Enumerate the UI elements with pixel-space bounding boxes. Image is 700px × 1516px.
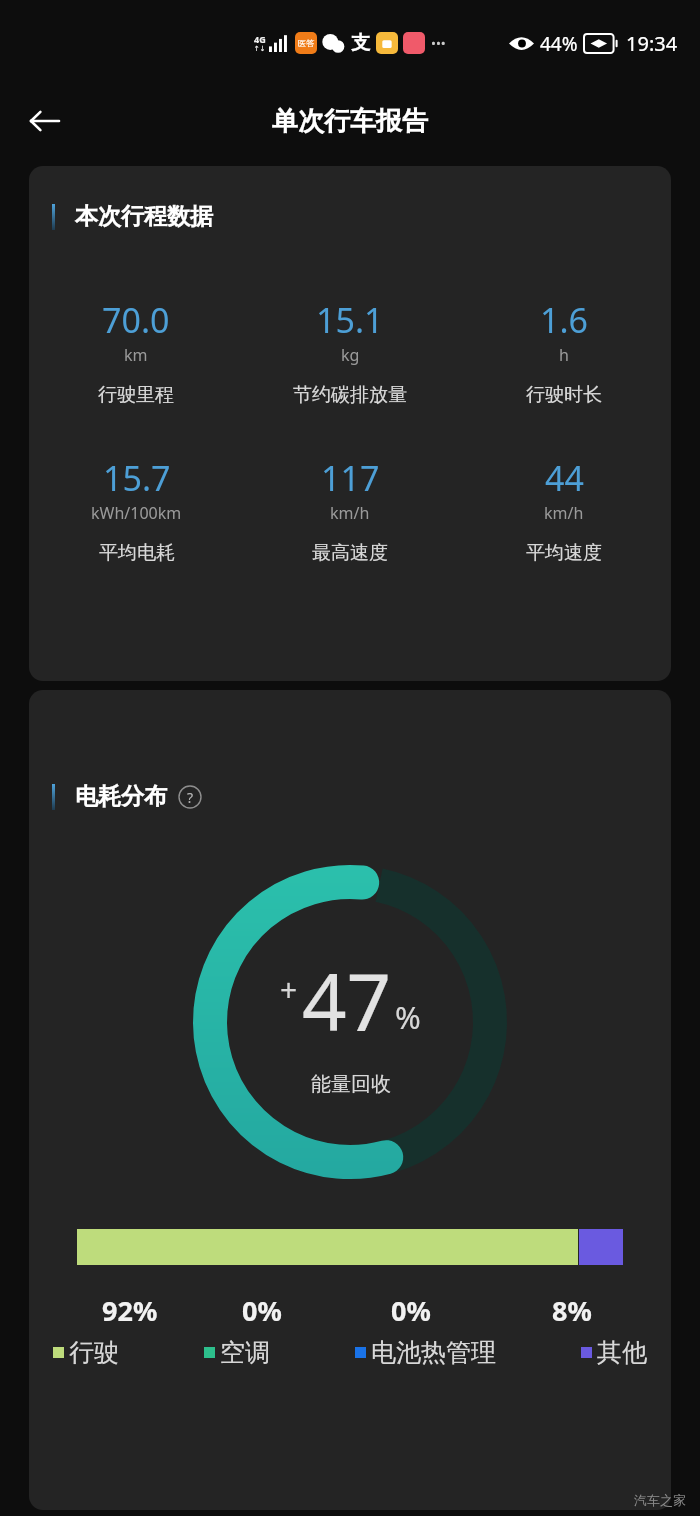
staticText: 0% <box>242 1292 282 1329</box>
staticText: 本次行程数据 <box>75 202 213 231</box>
staticText: 8% <box>552 1292 592 1329</box>
staticText: km <box>124 344 148 366</box>
staticText: 电耗分布 <box>75 782 167 811</box>
staticText: 92% <box>102 1292 158 1329</box>
staticText: 44% <box>540 31 578 57</box>
staticText: 汽车之家 <box>634 1492 686 1508</box>
staticText: + <box>280 969 298 1010</box>
staticText: 医答 <box>298 38 314 48</box>
staticText: 行驶 <box>69 1337 119 1368</box>
staticText: kg <box>341 344 360 366</box>
staticText: 其他 <box>597 1337 647 1368</box>
staticText: 47 <box>302 948 392 1054</box>
staticText: 节约碳排放量 <box>293 383 407 407</box>
staticText: 空调 <box>220 1337 270 1368</box>
staticText: 电池热管理 <box>371 1337 496 1368</box>
staticText: 单次行车报告 <box>272 105 428 138</box>
staticText: 19:34 <box>626 30 678 57</box>
button[interactable]: 电耗分布 <box>29 690 671 1510</box>
staticText: ? <box>187 788 194 807</box>
button[interactable]: Back <box>14 91 74 151</box>
staticText: ↑↓ <box>254 45 266 53</box>
staticText: ••• <box>431 34 446 52</box>
staticText: 15.1 <box>316 297 384 343</box>
staticText: % <box>395 996 421 1038</box>
staticText: h <box>559 344 569 366</box>
staticText: 15.7 <box>103 455 171 501</box>
button[interactable]: Help <box>177 784 203 810</box>
staticText: 行驶里程 <box>98 383 174 407</box>
staticText: 0% <box>391 1292 431 1329</box>
staticText: 70.0 <box>102 297 170 343</box>
staticText: 最高速度 <box>312 541 388 565</box>
button[interactable]: 本次行程数据 <box>29 166 671 681</box>
staticText: 支 <box>351 31 370 55</box>
staticText: km/h <box>330 502 370 524</box>
staticText: 平均速度 <box>526 541 602 565</box>
staticText: 能量回收 <box>311 1072 391 1097</box>
staticText: km/h <box>544 502 584 524</box>
staticText: kWh/100km <box>91 502 182 524</box>
staticText: 4G <box>254 33 266 45</box>
staticText: 平均电耗 <box>99 541 175 565</box>
staticText: 44 <box>545 455 584 501</box>
staticText: 1.6 <box>540 297 589 343</box>
staticText: 117 <box>321 455 380 501</box>
staticText: 行驶时长 <box>526 383 602 407</box>
